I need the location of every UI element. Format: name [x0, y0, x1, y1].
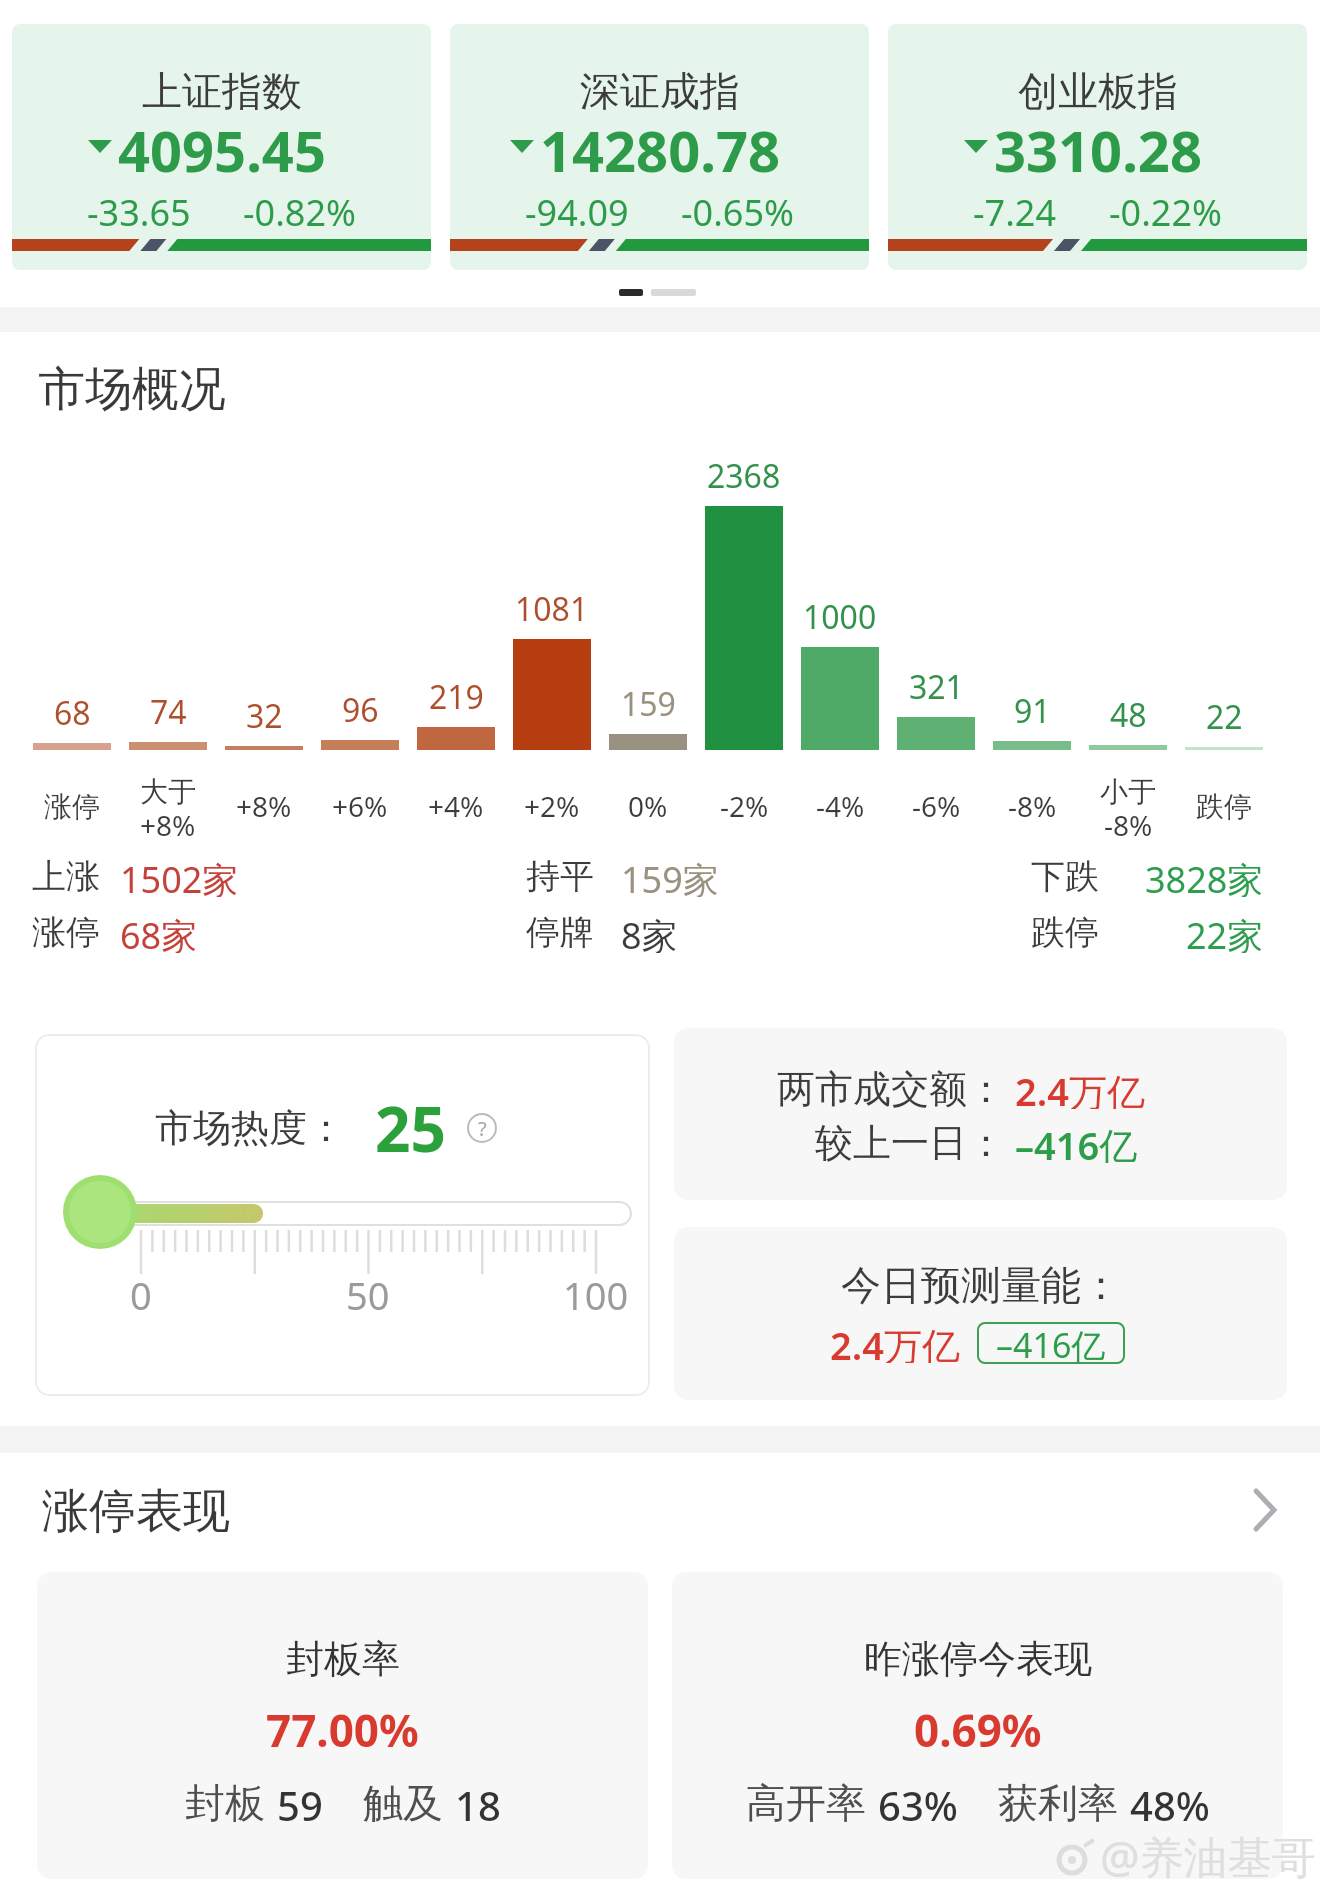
button[interactable]: 上证指数 [12, 24, 431, 270]
staticText: 大于 [140, 774, 196, 809]
staticText: 63% [878, 1778, 958, 1822]
staticText: 0 [130, 1269, 152, 1311]
button[interactable]: 昨涨停今表现 [672, 1572, 1283, 1879]
staticText: 1000 [803, 595, 877, 631]
staticText: 跌停 [1196, 789, 1252, 824]
staticText: 持平 [526, 855, 594, 897]
staticText: -0.65% [681, 188, 794, 230]
staticText: 上涨 [32, 855, 100, 897]
staticText: +8% [140, 806, 196, 844]
staticText: 涨停 [44, 789, 100, 824]
button[interactable]: 深证成指 [450, 24, 869, 270]
staticText: 上证指数 [142, 66, 302, 116]
staticText: 两市成交额： [777, 1065, 1005, 1109]
staticText: 1081 [515, 587, 589, 623]
staticText: 0% [628, 787, 668, 825]
staticText: -8% [1104, 806, 1153, 844]
staticText: –416亿 [996, 1322, 1106, 1364]
staticText: 77.00% [266, 1700, 419, 1754]
staticText: 50 [346, 1269, 390, 1311]
staticText: 14280.78 [540, 112, 780, 178]
staticText: 100 [563, 1269, 629, 1311]
staticText: 4095.45 [118, 112, 326, 178]
staticText: 2368 [707, 454, 781, 490]
staticText: -94.09 [525, 188, 629, 230]
staticText: ? [478, 1115, 487, 1142]
staticText: 昨涨停今表现 [864, 1635, 1092, 1681]
staticText: 68 [54, 691, 91, 727]
staticText: 48 [1110, 693, 1147, 729]
staticText: -6% [912, 787, 961, 825]
staticText: +2% [524, 787, 580, 825]
staticText: 159 [621, 682, 676, 718]
button[interactable]: 今日预测量能： [674, 1227, 1287, 1400]
staticText: –416亿 [1015, 1119, 1138, 1163]
staticText: 0.69% [914, 1700, 1042, 1754]
button[interactable]: 创业板指 [888, 24, 1307, 270]
staticText: +6% [332, 787, 388, 825]
staticText: -2% [720, 787, 769, 825]
staticText: 159家 [621, 855, 719, 897]
staticText: +8% [236, 787, 292, 825]
staticText: -4% [816, 787, 865, 825]
staticText: 2.4万亿 [830, 1319, 960, 1363]
staticText: +4% [428, 787, 484, 825]
button[interactable]: 封板率 [37, 1572, 648, 1879]
staticText: 68家 [120, 911, 198, 953]
staticText: -8% [1008, 787, 1057, 825]
staticText: 25 [375, 1086, 446, 1162]
staticText: 22 [1206, 695, 1243, 731]
staticText: 较上一日： [815, 1119, 1005, 1163]
staticText: 74 [150, 690, 187, 726]
staticText: -0.22% [1109, 188, 1222, 230]
staticText: 高开率 [746, 1778, 866, 1822]
staticText: 48% [1130, 1778, 1210, 1822]
staticText: 8家 [621, 911, 678, 953]
staticText: 321 [909, 665, 964, 701]
staticText: 下跌 [1031, 855, 1099, 897]
staticText: 59 [277, 1778, 323, 1822]
staticText: -7.24 [973, 188, 1057, 230]
staticText: @养油基哥 [1100, 1826, 1316, 1882]
staticText: 今日预测量能： [841, 1260, 1121, 1306]
staticText: 市场热度： [155, 1104, 345, 1152]
staticText: 封板率 [286, 1635, 400, 1681]
staticText: 停牌 [526, 911, 594, 953]
staticText: 小于 [1100, 774, 1156, 809]
staticText: -0.82% [243, 188, 356, 230]
staticText: 获利率 [998, 1778, 1118, 1822]
staticText: 涨停表现 [42, 1482, 230, 1536]
staticText: 深证成指 [580, 66, 740, 116]
staticText: 封板 [185, 1778, 265, 1822]
staticText: 3310.28 [994, 112, 1202, 178]
staticText: 96 [342, 688, 379, 724]
staticText: -33.65 [87, 188, 191, 230]
staticText: 2.4万亿 [1015, 1065, 1145, 1109]
staticText: 3828家 [1145, 855, 1264, 897]
staticText: 91 [1014, 689, 1051, 725]
staticText: 18 [455, 1778, 501, 1822]
staticText: 跌停 [1031, 911, 1099, 953]
staticText: 市场概况 [38, 360, 226, 414]
button[interactable]: 两市成交额： [674, 1028, 1287, 1200]
staticText: 创业板指 [1018, 66, 1178, 116]
staticText: 32 [246, 694, 283, 730]
staticText: 触及 [363, 1778, 443, 1822]
staticText: 1502家 [120, 855, 239, 897]
staticText: 219 [429, 675, 484, 711]
button[interactable]: 市场热度： [35, 1034, 650, 1396]
staticText: 22家 [1186, 911, 1264, 953]
staticText: 涨停 [32, 911, 100, 953]
